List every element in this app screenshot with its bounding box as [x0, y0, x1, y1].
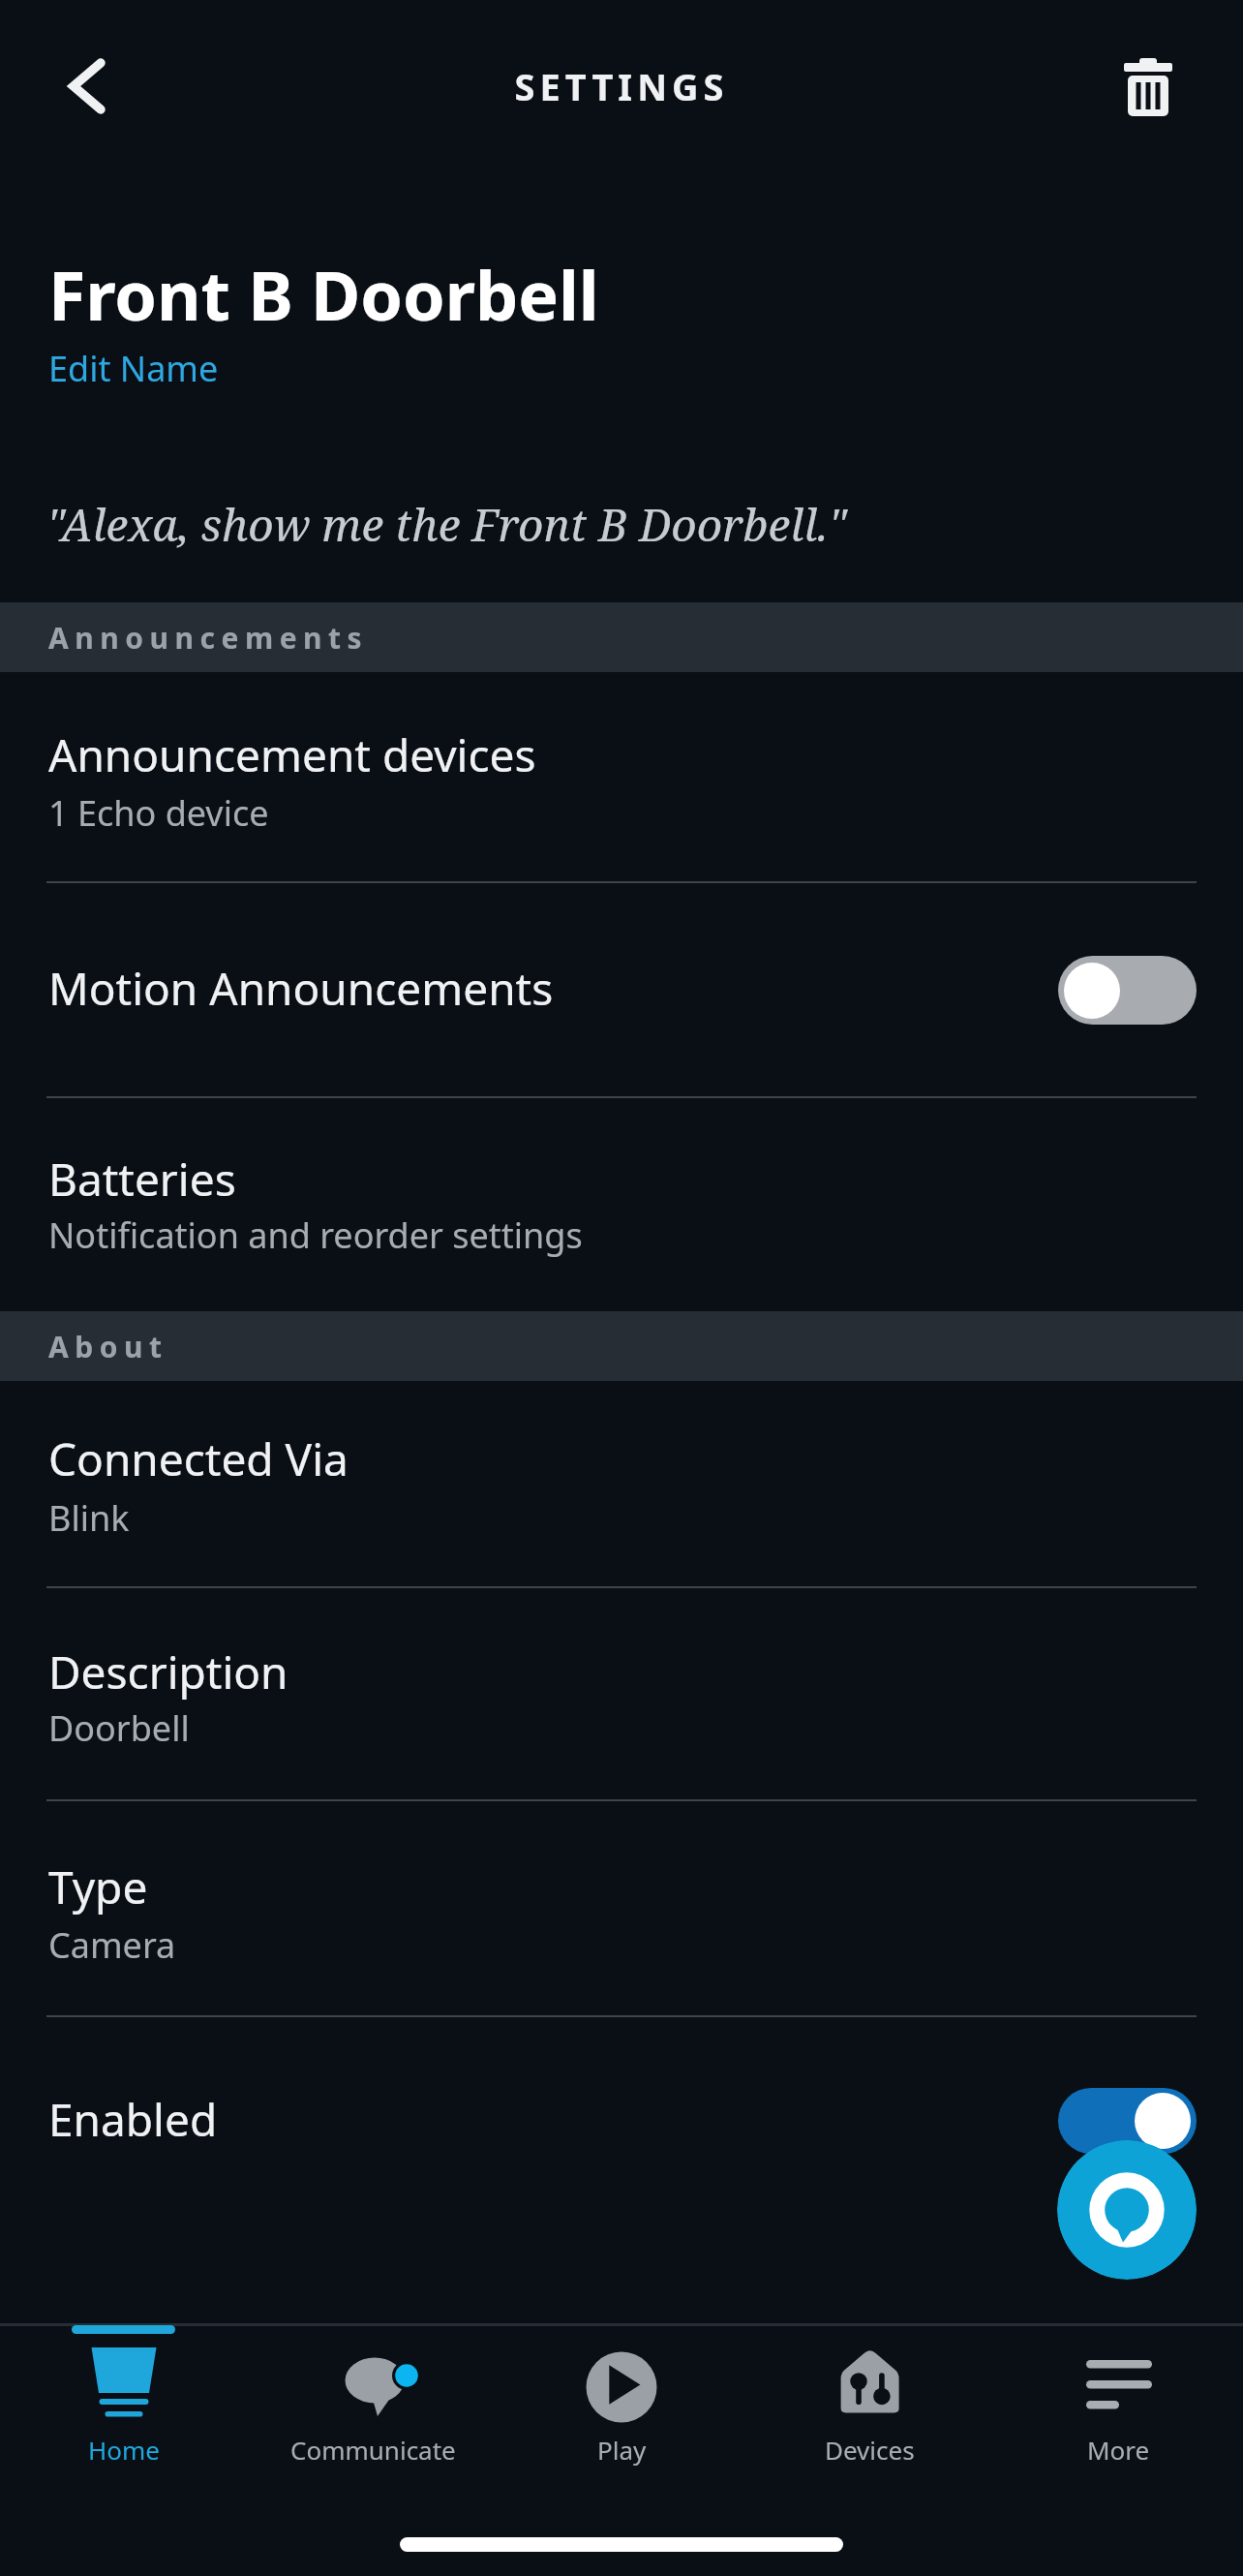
button[interactable] — [1058, 956, 1197, 1025]
button[interactable] — [0, 692, 1243, 880]
button[interactable] — [0, 1800, 1243, 2014]
staticText: Front B Doorbell — [48, 248, 599, 340]
staticText: Doorbell — [48, 1704, 190, 1752]
button[interactable]: Devices — [763, 2328, 976, 2479]
staticText: Communicate — [290, 2433, 456, 2467]
staticText: Announcements — [48, 618, 369, 658]
staticText: Batteries — [48, 1149, 236, 1210]
staticText: Announcement devices — [48, 724, 536, 785]
staticText: Devices — [825, 2433, 915, 2467]
staticText: Enabled — [48, 2089, 218, 2150]
staticText: About — [48, 1327, 168, 1366]
staticText: SETTINGS — [0, 61, 1243, 111]
button[interactable] — [0, 1587, 1243, 1798]
staticText: "Alexa, show me the Front B Doorbell." — [46, 494, 847, 555]
staticText: 1 Echo device — [48, 789, 269, 837]
staticText: Connected Via — [48, 1428, 349, 1489]
staticText: Notification and reorder settings — [48, 1211, 583, 1259]
button[interactable]: Communicate — [266, 2328, 479, 2479]
staticText: Blink — [48, 1494, 130, 1542]
staticText: More — [1087, 2433, 1150, 2467]
button[interactable] — [0, 882, 1243, 1094]
button[interactable] — [0, 1381, 1243, 1585]
staticText: Description — [48, 1641, 288, 1702]
staticText: Camera — [48, 1921, 176, 1969]
button[interactable]: Edit Name — [48, 345, 219, 392]
button[interactable] — [1124, 58, 1172, 116]
button[interactable] — [68, 60, 106, 114]
staticText: Home — [88, 2433, 160, 2467]
button[interactable]: Home — [17, 2328, 230, 2479]
button[interactable] — [0, 1096, 1243, 1311]
staticText: Motion Announcements — [48, 958, 554, 1019]
button[interactable] — [0, 2016, 1243, 2210]
button[interactable]: More — [1012, 2328, 1225, 2479]
staticText: Play — [597, 2433, 647, 2467]
button[interactable]: Play — [515, 2328, 728, 2479]
staticText: Type — [48, 1856, 148, 1917]
button[interactable] — [1057, 2140, 1197, 2280]
button[interactable] — [1058, 2088, 1197, 2154]
